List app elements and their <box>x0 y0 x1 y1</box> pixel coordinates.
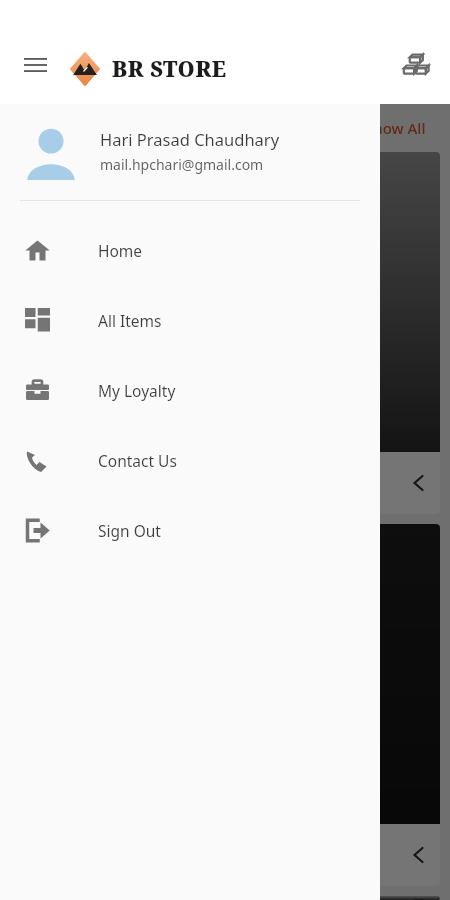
button[interactable]: Sign Out <box>0 495 380 565</box>
button[interactable]: Home <box>0 215 380 285</box>
staticText: Contact Us <box>98 450 177 471</box>
staticText: My Loyalty <box>98 380 176 401</box>
button[interactable]: My Loyalty <box>0 355 380 425</box>
staticText: All Items <box>98 310 162 331</box>
staticText: Home <box>98 240 143 261</box>
button[interactable] <box>10 896 440 900</box>
button[interactable]: Products <box>394 44 438 88</box>
button[interactable]: Open navigation menu <box>14 44 56 86</box>
button[interactable]: Show All <box>365 118 426 138</box>
staticText: mail.hpchari@gmail.com <box>100 155 264 174</box>
button[interactable] <box>10 524 440 886</box>
button[interactable] <box>10 152 440 514</box>
button[interactable]: BR STORE <box>66 50 227 88</box>
staticText: Hari Prasad Chaudhary <box>100 128 280 150</box>
staticText: BR STORE <box>112 55 227 84</box>
button[interactable]: All Items <box>0 285 380 355</box>
staticText: Sign Out <box>98 520 161 541</box>
button[interactable]: Contact Us <box>0 425 380 495</box>
button[interactable]: Hari Prasad Chaudhary <box>22 122 364 180</box>
